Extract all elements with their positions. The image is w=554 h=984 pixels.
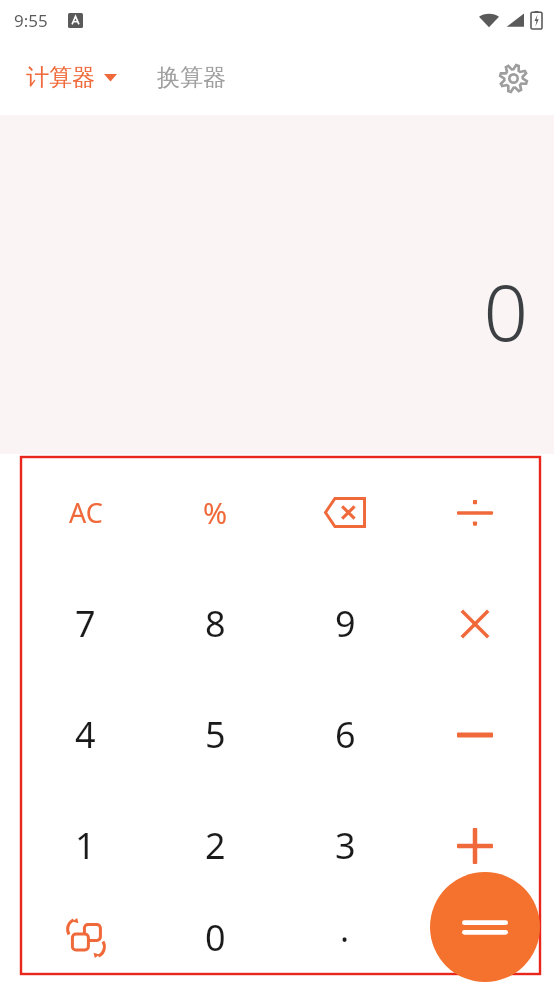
button[interactable]: 5	[150, 679, 280, 790]
staticText: 4	[75, 710, 96, 759]
staticText: %	[203, 493, 228, 532]
staticText: .	[340, 906, 350, 952]
staticText: 7	[75, 599, 96, 648]
button[interactable]: Equals	[430, 872, 540, 982]
button[interactable]: 0	[150, 901, 280, 974]
staticText: 0	[483, 258, 528, 364]
staticText: 2	[205, 821, 226, 870]
staticText: 计算器	[26, 63, 95, 92]
staticText: 5	[205, 710, 226, 759]
button[interactable]: 7	[21, 568, 150, 679]
staticText: 9	[335, 599, 356, 648]
button[interactable]: AC	[21, 457, 150, 568]
button[interactable]: 4	[21, 679, 150, 790]
button[interactable]: 3	[280, 790, 410, 901]
button[interactable]: 2	[150, 790, 280, 901]
staticText: 换算器	[157, 63, 226, 92]
staticText: 1	[75, 821, 96, 870]
staticText: 6	[335, 710, 356, 759]
button[interactable]: Convert units	[21, 901, 150, 974]
button[interactable]: 1	[21, 790, 150, 901]
button[interactable]: 6	[280, 679, 410, 790]
staticText: 0	[205, 913, 226, 962]
staticText: 3	[335, 821, 356, 870]
button[interactable]: Plus	[410, 790, 540, 901]
button[interactable]: Percent	[150, 457, 280, 568]
staticText: 8	[205, 599, 226, 648]
button[interactable]: 计算器	[26, 63, 117, 92]
staticText: 9:55	[14, 9, 48, 32]
button[interactable]: Minus	[410, 679, 540, 790]
button[interactable]: Settings	[490, 55, 536, 101]
button[interactable]: Multiply	[410, 568, 540, 679]
button[interactable]: 换算器	[157, 63, 226, 92]
button[interactable]: 8	[150, 568, 280, 679]
staticText: AC	[69, 494, 103, 531]
button[interactable]: Decimal point	[280, 901, 410, 974]
button[interactable]: Divide	[410, 457, 540, 568]
button[interactable]: Backspace	[280, 457, 410, 568]
button[interactable]: 9	[280, 568, 410, 679]
